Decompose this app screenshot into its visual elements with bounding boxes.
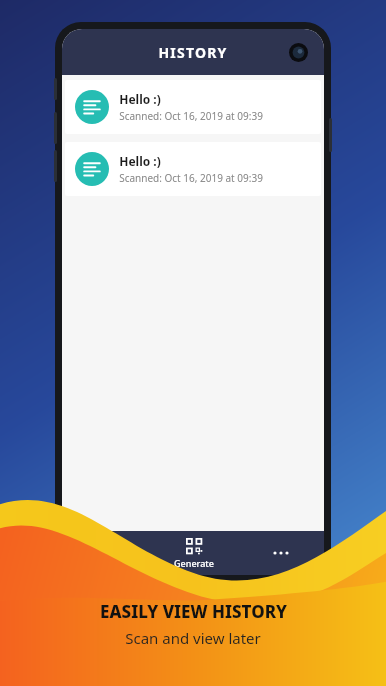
staticText: Hello :) [119,153,161,169]
staticText: Scanned: Oct 16, 2019 at 09:39 [119,109,263,123]
staticText: HISTORY [158,43,228,62]
staticText: Hello :) [119,91,161,107]
button[interactable]: More options [263,535,299,571]
button[interactable]: Hello :) [65,142,321,196]
staticText: Scanned: Oct 16, 2019 at 09:39 [119,171,263,185]
button[interactable]: Hello :) [65,80,321,134]
button[interactable]: History [71,535,141,572]
staticText: EASILY VIEW HISTORY [100,600,287,623]
staticText: History [90,557,122,569]
staticText: Generate [174,557,214,569]
staticText: Scan and view later [125,628,261,648]
button[interactable]: Generate [159,535,229,572]
